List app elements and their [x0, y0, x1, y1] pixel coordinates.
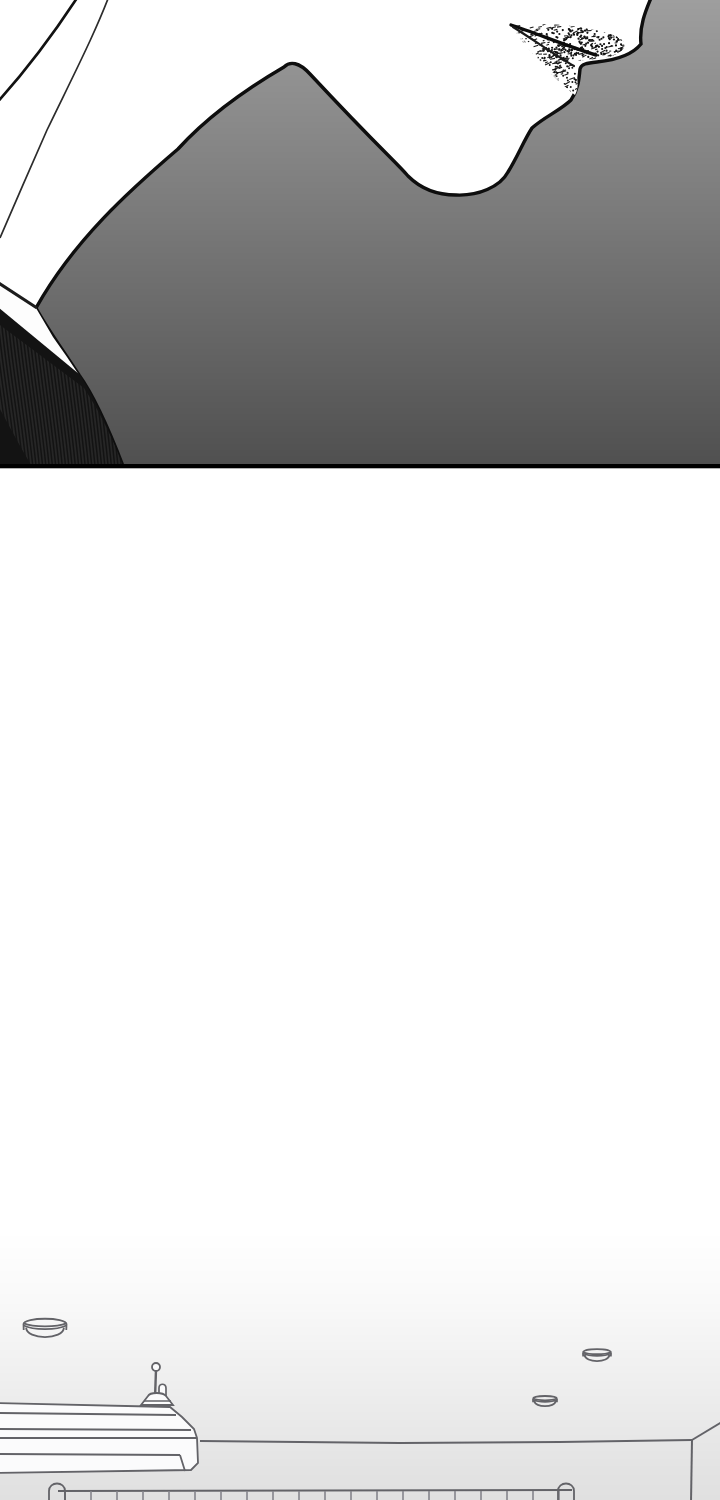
button[interactable]: Webtoon page, tap to show controls	[0, 0, 720, 1500]
